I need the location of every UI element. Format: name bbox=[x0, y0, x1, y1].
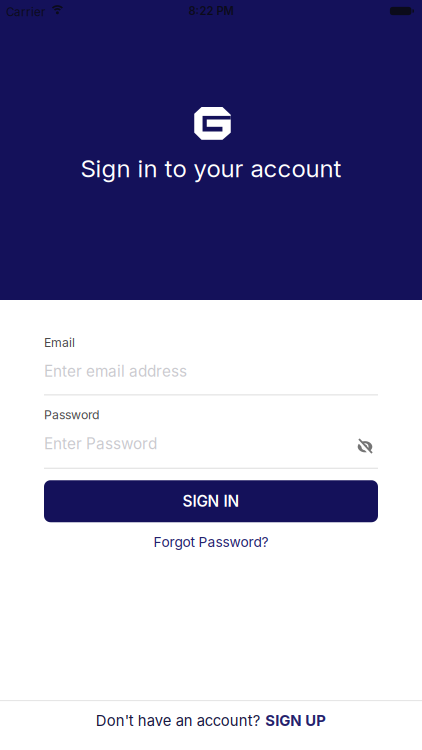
staticText: 8:22 PM bbox=[188, 4, 233, 18]
staticText: SIGN IN bbox=[182, 492, 239, 511]
staticText: SIGN UP bbox=[265, 712, 326, 729]
staticText: Forgot Password? bbox=[153, 534, 268, 550]
button[interactable]: SIGN IN bbox=[44, 480, 378, 522]
staticText: Don't have an account? bbox=[96, 712, 261, 729]
staticText: Sign in to your account bbox=[80, 154, 341, 183]
staticText: Enter email address bbox=[44, 362, 187, 380]
staticText: Enter Password bbox=[44, 434, 157, 453]
button[interactable]: Show password bbox=[355, 437, 375, 457]
staticText: Email bbox=[44, 335, 75, 350]
button[interactable]: Don't have an account? bbox=[96, 712, 326, 729]
staticText: Password bbox=[44, 407, 100, 422]
staticText: Carrier bbox=[6, 5, 45, 19]
button[interactable]: Forgot Password? bbox=[153, 534, 268, 550]
